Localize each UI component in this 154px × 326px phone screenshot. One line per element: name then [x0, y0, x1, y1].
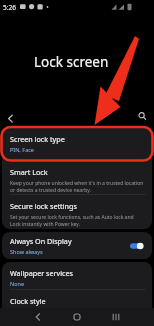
staticText: Set your secure lock functions, such as …	[10, 214, 134, 221]
button[interactable]	[130, 107, 154, 125]
staticText: Show always	[10, 248, 43, 255]
staticText: Always On Display	[10, 236, 72, 246]
staticText: PIN, Face	[10, 146, 34, 153]
staticText: Lock instantly with Power key.	[10, 221, 80, 228]
button[interactable]	[0, 107, 22, 125]
staticText: Wallpaper services	[10, 268, 73, 278]
staticText: Keep your phone unlocked when it's in a …	[10, 180, 144, 187]
staticText: Clock style	[10, 296, 46, 306]
button[interactable]	[65, 308, 89, 326]
button[interactable]	[104, 308, 128, 326]
button[interactable]: Secure lock settings	[2, 195, 152, 229]
staticText: None	[10, 280, 25, 287]
staticText: Secure lock settings	[10, 201, 77, 211]
button[interactable]	[26, 308, 50, 326]
staticText: or detects a trusted device nearby.	[10, 187, 91, 194]
staticText: 5:26	[3, 3, 16, 12]
button[interactable]: Always On Display	[2, 232, 152, 259]
staticText: Lock screen	[34, 53, 109, 71]
button[interactable]: Smart Lock	[2, 160, 152, 194]
staticText: Screen lock type	[10, 134, 65, 144]
button[interactable]: Wallpaper services	[2, 262, 152, 289]
button[interactable]: Screen lock type	[2, 126, 152, 160]
staticText: Smart Lock	[10, 167, 48, 177]
button[interactable]: Clock style	[2, 290, 152, 308]
